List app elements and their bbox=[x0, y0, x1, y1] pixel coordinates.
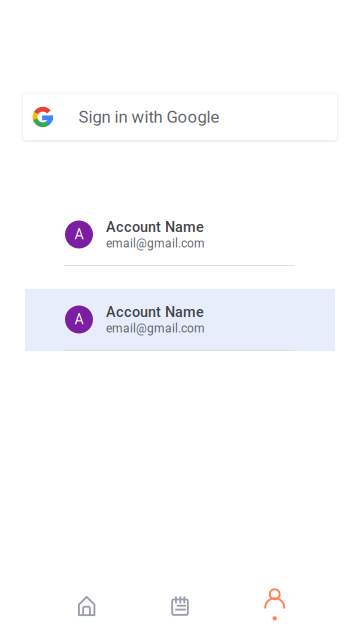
staticText: Sign in with Google bbox=[79, 107, 220, 127]
staticText: Account Name bbox=[106, 218, 204, 235]
staticText: email@gmail.com bbox=[106, 236, 205, 250]
button[interactable]: Profile bbox=[227, 580, 320, 632]
button[interactable]: Notes bbox=[133, 580, 227, 632]
button[interactable]: Home bbox=[40, 580, 133, 632]
staticText: email@gmail.com bbox=[106, 321, 205, 335]
staticText: Account Name bbox=[106, 303, 204, 320]
staticText: A bbox=[74, 226, 83, 243]
button[interactable]: Sign in with Google bbox=[23, 94, 337, 140]
staticText: A bbox=[74, 311, 83, 328]
button[interactable]: A bbox=[25, 289, 335, 351]
button[interactable]: A bbox=[25, 204, 335, 266]
